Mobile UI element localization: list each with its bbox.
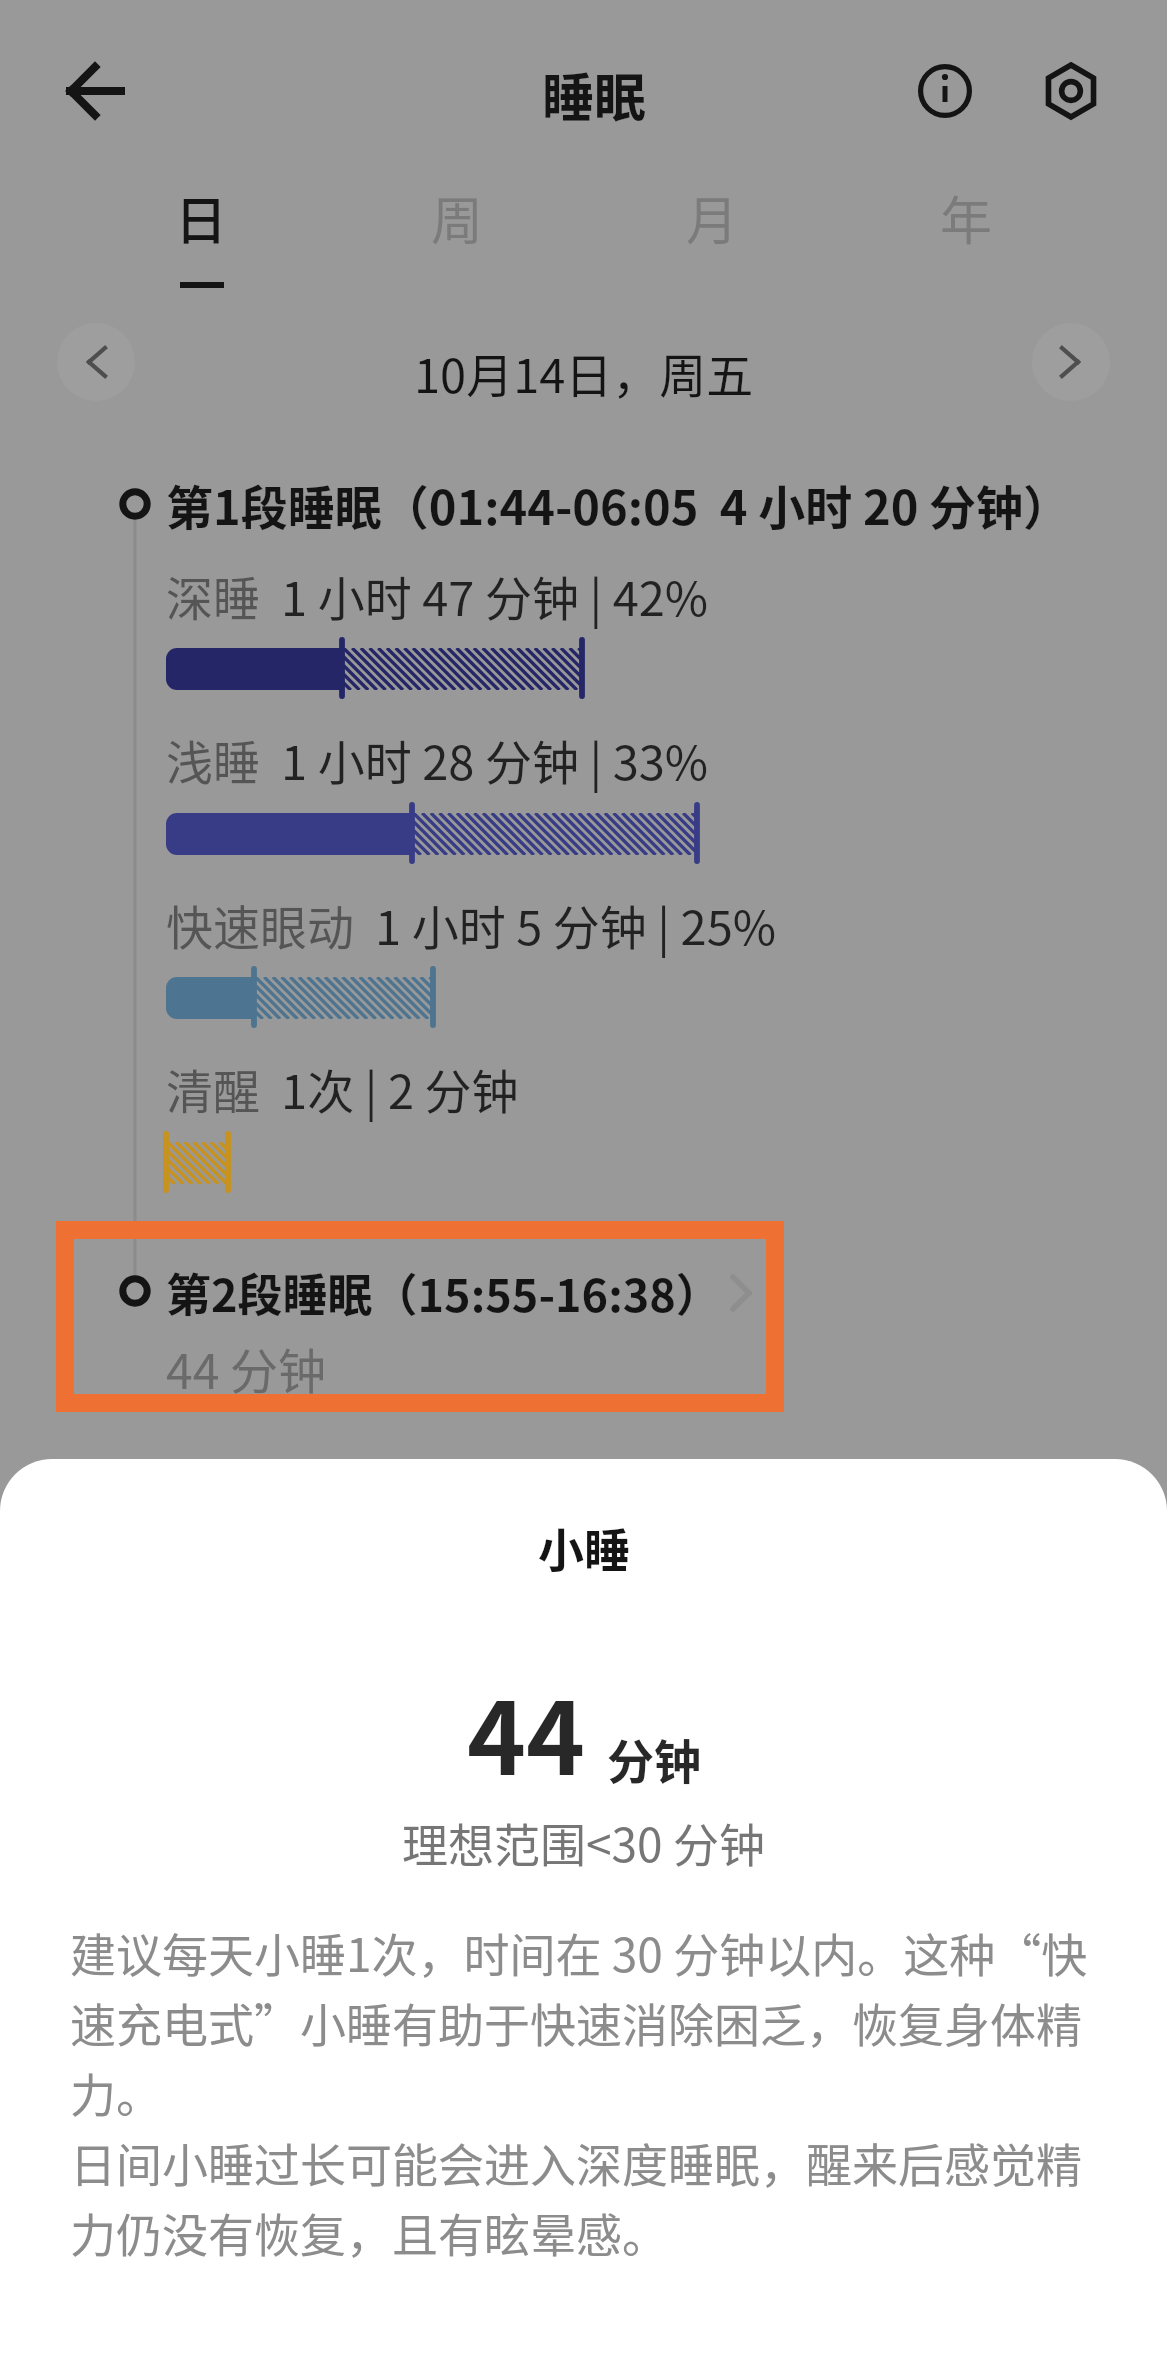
button[interactable]: 年 xyxy=(894,180,1038,300)
button[interactable]: Info xyxy=(902,48,988,134)
staticText: 小睡 xyxy=(538,1514,630,1581)
staticText: 年 xyxy=(940,180,993,255)
staticText: 周 xyxy=(431,180,484,255)
button[interactable]: 月 xyxy=(640,180,784,300)
staticText: 清醒 1次 | 2 分钟 xyxy=(166,1054,519,1122)
button[interactable]: Back xyxy=(52,48,138,134)
staticText: 月 xyxy=(686,180,739,255)
staticText: 深睡 1 小时 47 分钟 | 42% xyxy=(166,561,709,629)
staticText: 睡眠 xyxy=(542,57,647,132)
staticText: 建议每天小睡1次，时间在 30 分钟以内。这种“快速充电式”小睡有助于快速消除困… xyxy=(70,1919,1112,2265)
staticText: 理想范围<30 分钟 xyxy=(402,1809,765,1876)
staticText: 浅睡 1 小时 28 分钟 | 33% xyxy=(166,725,709,793)
staticText: 10月14日，周五 xyxy=(414,338,754,406)
button[interactable]: Settings xyxy=(1028,48,1114,134)
staticText: 44 xyxy=(467,1659,585,1804)
staticText: 日 xyxy=(175,180,228,255)
button[interactable]: 第2段睡眠（15:55-16:38） xyxy=(166,1260,775,1390)
staticText: 快速眼动 1 小时 5 分钟 | 25% xyxy=(166,890,777,958)
button[interactable]: 周 xyxy=(385,180,529,300)
button[interactable]: Next day xyxy=(1032,323,1110,401)
staticText: 第1段睡眠（01:44-06:05 4 小时 20 分钟） xyxy=(166,470,1061,532)
button[interactable]: 第1段睡眠（01:44-06:05 4 小时 20 分钟） xyxy=(166,470,1061,532)
staticText: 第2段睡眠（15:55-16:38） xyxy=(166,1260,721,1325)
button[interactable]: Previous day xyxy=(57,323,135,401)
staticText: 分钟 xyxy=(607,1724,701,1792)
button[interactable]: 日 xyxy=(129,180,273,300)
staticText: 44 分钟 xyxy=(166,1333,327,1398)
